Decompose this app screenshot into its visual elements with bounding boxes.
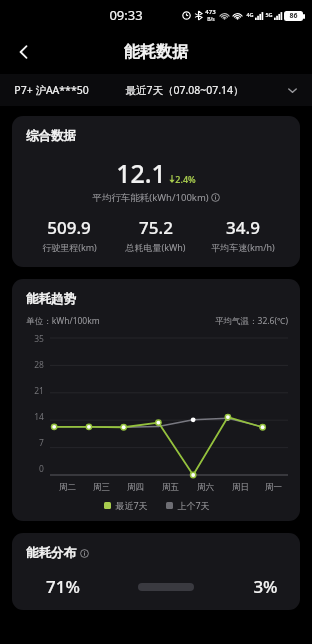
staticText: 5G xyxy=(265,11,273,18)
staticText: 周六 xyxy=(197,482,214,493)
staticText: 12.1 xyxy=(116,156,166,190)
staticText: 34.9 xyxy=(226,216,260,239)
button[interactable]: 上个7天 xyxy=(166,499,210,511)
staticText: 473 xyxy=(205,8,216,16)
staticText: 21 xyxy=(34,385,44,397)
staticText: 75.2 xyxy=(139,216,173,239)
staticText: 最近7天（07.08~07.14） xyxy=(125,83,244,97)
button[interactable]: Back xyxy=(6,34,42,70)
button[interactable]: P7+ 沪AA***50 xyxy=(14,83,89,97)
staticText: 总耗电量(kWh) xyxy=(125,241,186,253)
staticText: 单位：kWh/100km xyxy=(26,315,100,327)
staticText: 综合数据 xyxy=(26,128,76,144)
staticText: 周五 xyxy=(162,482,179,493)
staticText: 能耗分布 xyxy=(26,545,76,561)
staticText: 平均车速(km/h) xyxy=(211,241,275,253)
staticText: 0 xyxy=(39,463,44,475)
staticText: 7 xyxy=(39,437,44,449)
staticText: 28 xyxy=(34,359,44,371)
staticText: 3% xyxy=(253,575,278,598)
staticText: 能耗趋势 xyxy=(26,291,76,307)
button[interactable]: 最近7天（07.08~07.14） xyxy=(125,83,298,97)
staticText: 上个7天 xyxy=(177,499,210,511)
staticText: 能耗数据 xyxy=(124,42,188,62)
staticText: 最近7天 xyxy=(115,499,148,511)
staticText: 周四 xyxy=(127,482,144,493)
staticText: 平均气温：32.6(℃) xyxy=(215,315,288,327)
staticText: 35 xyxy=(34,333,44,345)
staticText: 86 xyxy=(289,11,298,21)
staticText: 4G xyxy=(246,11,254,18)
staticText: P7+ 沪AA***50 xyxy=(14,83,89,97)
button[interactable]: 509.9 xyxy=(26,216,112,253)
staticText: 行驶里程(km) xyxy=(42,241,97,253)
staticText: 2.4% xyxy=(175,173,196,185)
staticText: 平均行车能耗(kWh/100km) xyxy=(92,191,209,204)
staticText: 周日 xyxy=(232,482,249,493)
staticText: 周二 xyxy=(59,482,76,493)
button[interactable]: 34.9 xyxy=(199,216,286,253)
staticText: 509.9 xyxy=(47,216,91,239)
staticText: 周一 xyxy=(265,482,282,493)
button[interactable]: 最近7天 xyxy=(104,499,148,511)
staticText: 14 xyxy=(34,411,44,423)
staticText: 71% xyxy=(46,575,80,598)
button[interactable]: 75.2 xyxy=(112,216,199,253)
staticText: B/s xyxy=(207,16,215,23)
staticText: 周三 xyxy=(93,482,110,493)
staticText: 09:33 xyxy=(109,6,143,24)
